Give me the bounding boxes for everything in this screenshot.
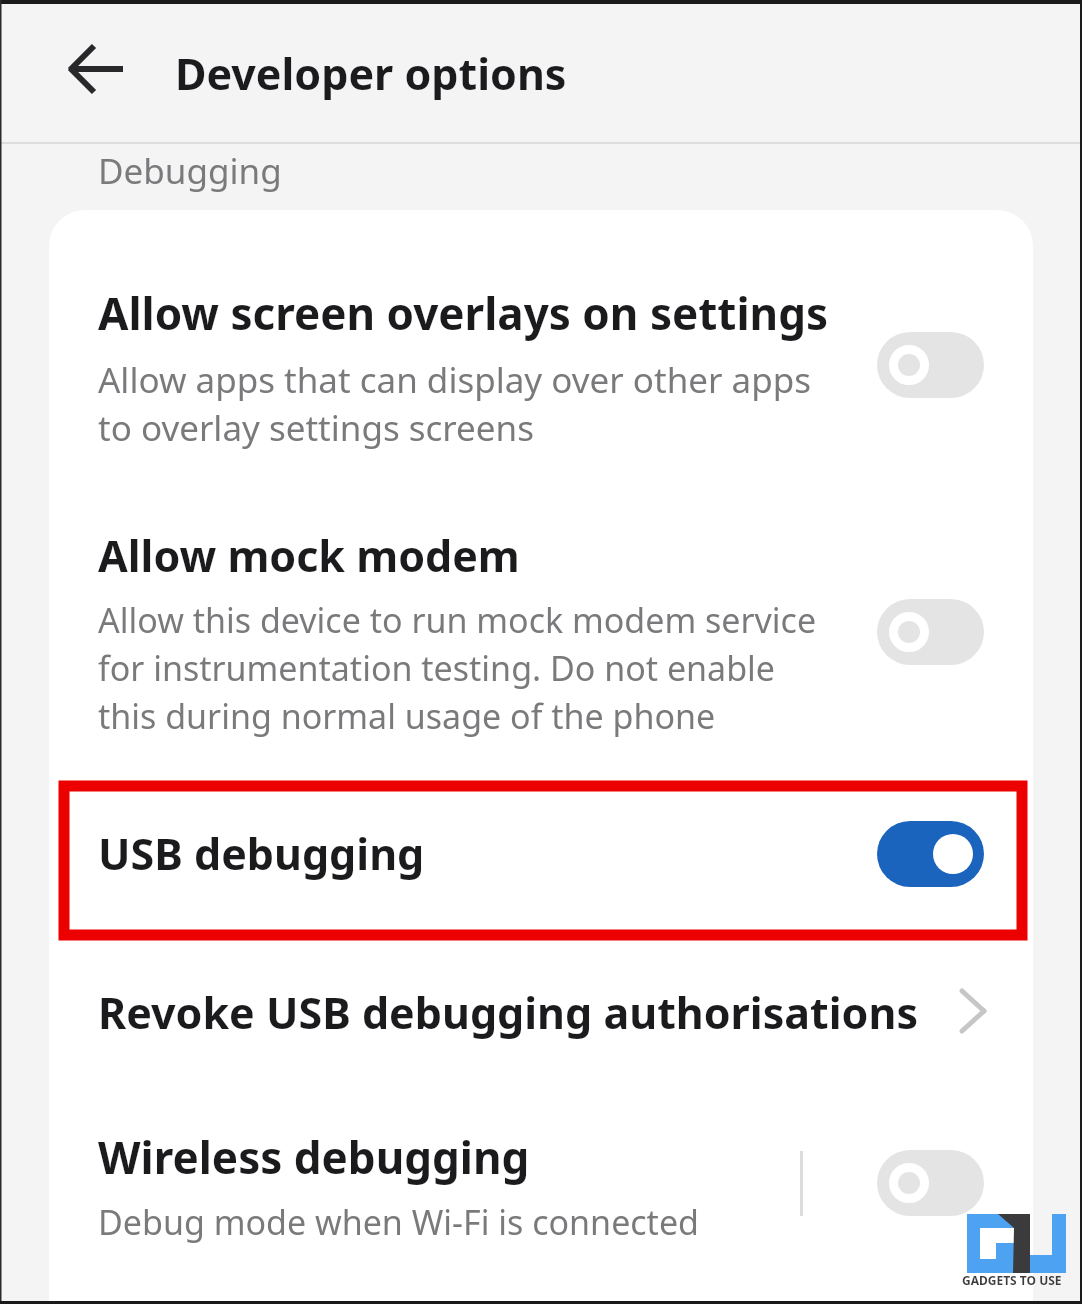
button[interactable] xyxy=(877,599,984,665)
staticText: USB debugging xyxy=(98,824,425,883)
staticText: Allow this device to run mock modem serv… xyxy=(98,597,817,643)
staticText: Developer options xyxy=(175,44,567,103)
button[interactable] xyxy=(49,1105,1033,1265)
button[interactable] xyxy=(60,33,132,105)
button[interactable] xyxy=(877,821,984,887)
button[interactable] xyxy=(877,1150,984,1216)
button[interactable] xyxy=(49,800,1033,920)
staticText: to overlay settings screens xyxy=(98,404,534,452)
button[interactable] xyxy=(877,332,984,398)
staticText: Wireless debugging xyxy=(98,1127,530,1187)
button[interactable] xyxy=(49,510,1033,750)
staticText: this during normal usage of the phone xyxy=(98,693,716,739)
button[interactable] xyxy=(49,960,1033,1070)
staticText: Debug mode when Wi-Fi is connected xyxy=(98,1199,699,1245)
button[interactable] xyxy=(49,262,1033,472)
staticText: Debugging xyxy=(98,147,282,195)
staticText: Allow apps that can display over other a… xyxy=(98,356,812,404)
staticText: Revoke USB debugging authorisations xyxy=(98,983,918,1042)
staticText: for instrumentation testing. Do not enab… xyxy=(98,645,776,691)
staticText: GADGETS TO USE xyxy=(962,1272,1062,1288)
staticText: Allow screen overlays on settings xyxy=(98,283,829,343)
staticText: Allow mock modem xyxy=(98,526,520,585)
